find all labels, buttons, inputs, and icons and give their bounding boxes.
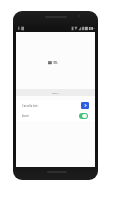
- button[interactable]: Apri: [81, 102, 89, 109]
- staticText: Avvisi: [22, 114, 29, 118]
- button[interactable]: Cancella dati: [16, 100, 95, 111]
- button[interactable]: Notifiche: [79, 113, 88, 119]
- button[interactable]: Avvisi: [16, 110, 95, 121]
- staticText: Menu: [52, 91, 59, 94]
- staticText: Cancella dati: [22, 104, 38, 108]
